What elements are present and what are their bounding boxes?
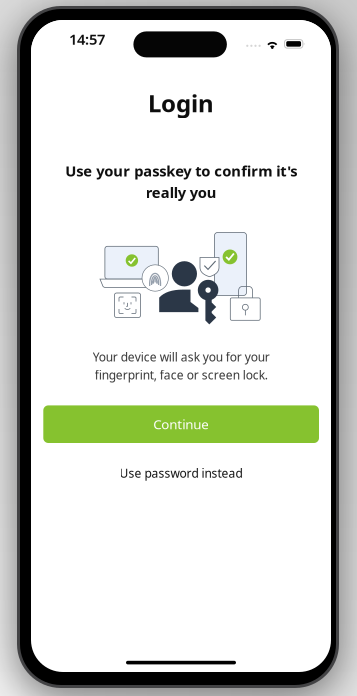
staticText: Your device will ask you for your finger… <box>92 349 269 383</box>
staticText: 14:57 <box>69 29 105 49</box>
button[interactable]: Use password instead <box>101 462 261 484</box>
staticText: Login <box>148 87 214 119</box>
staticText: Continue <box>153 415 209 433</box>
button[interactable]: Continue <box>43 405 319 443</box>
staticText: Use password instead <box>119 465 242 481</box>
staticText: Use your passkey to confirm it's really … <box>65 161 297 202</box>
